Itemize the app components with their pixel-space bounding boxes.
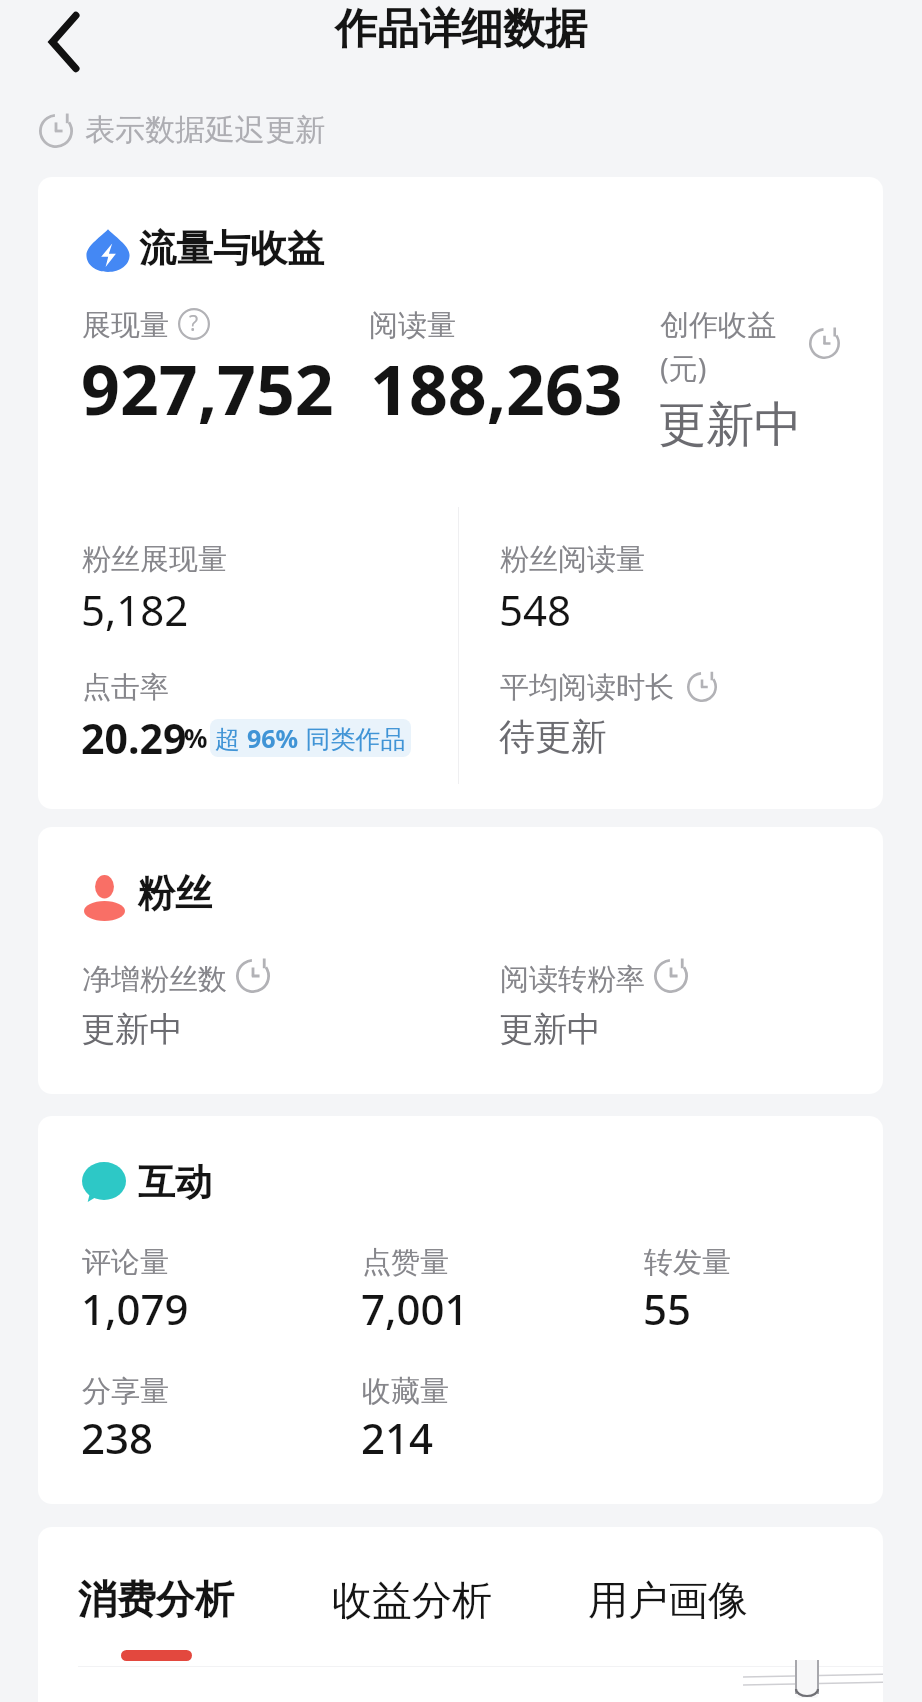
staticText: 更新中 [81,1008,183,1051]
staticText: 创作收益 [660,307,776,344]
staticText: 流量与收益 [139,225,324,272]
staticText: 同类作品 [299,721,406,755]
staticText: ? [189,309,199,338]
staticText: 平均阅读时长 [500,669,674,706]
staticText: 1,079 [81,1280,189,1337]
staticText: 96% [247,721,299,755]
staticText: 净增粉丝数 [82,961,227,998]
staticText: 阅读转粉率 [500,961,645,998]
staticText: 互动 [138,1159,212,1206]
button[interactable]: 收益分析 [332,1575,492,1662]
button[interactable]: 消费分析 [78,1575,234,1661]
staticText: 188,263 [370,342,623,435]
staticText: 238 [81,1409,154,1466]
staticText: 消费分析 [78,1575,234,1624]
staticText: 用户画像 [588,1575,748,1625]
staticText: 阅读量 [369,307,456,344]
staticText: 214 [361,1409,434,1466]
button[interactable]: Back [31,7,101,77]
staticText: 超 [215,721,247,755]
staticText: 7,001 [361,1280,469,1337]
staticText: 更新中 [499,1008,601,1051]
staticText: 作品详细数据 [335,3,587,56]
staticText: 点赞量 [362,1244,449,1281]
staticText: 20.29 [81,710,187,766]
staticText: 收藏量 [362,1373,449,1410]
staticText: 分享量 [82,1373,169,1410]
staticText: 5,182 [81,581,189,638]
staticText: 点击率 [82,669,169,706]
button[interactable]: 用户画像 [588,1575,748,1662]
staticText: 55 [643,1280,692,1337]
staticText: 粉丝展现量 [82,541,227,578]
staticText: 展现量 [82,307,169,344]
staticText: 粉丝阅读量 [500,541,645,578]
staticText: (元) [660,348,707,388]
staticText: 粉丝 [138,870,212,917]
staticText: 收益分析 [332,1575,492,1625]
staticText: 548 [499,581,572,638]
staticText: 表示数据延迟更新 [85,111,325,149]
staticText: 更新中 [658,395,802,455]
staticText: 927,752 [81,342,334,435]
staticText: 转发量 [644,1244,731,1281]
staticText: % [184,720,208,755]
staticText: 待更新 [499,714,607,759]
staticText: 评论量 [82,1244,169,1281]
